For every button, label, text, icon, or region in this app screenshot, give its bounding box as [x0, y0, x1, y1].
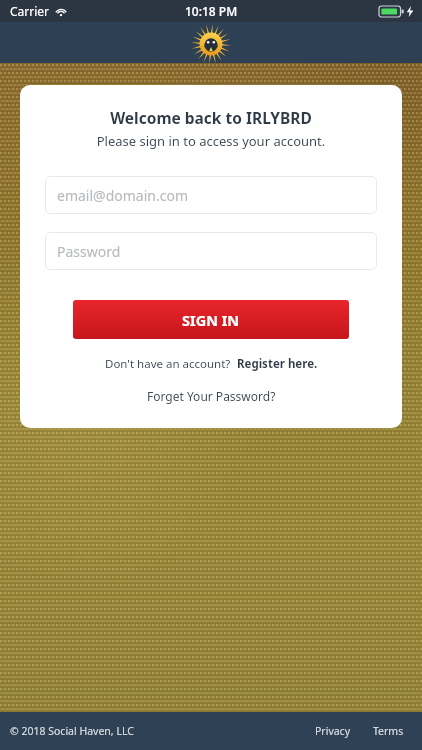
other: IRLYBRD logo	[191, 24, 231, 64]
staticText: Welcome back to IRLYBRD	[45, 107, 377, 128]
staticText: Password	[57, 242, 121, 261]
staticText: Terms	[373, 724, 404, 738]
staticText: Forget Your Password?	[147, 388, 276, 404]
staticText: Carrier	[10, 3, 50, 19]
staticText: Don't have an account?	[105, 356, 231, 372]
staticText: Privacy	[315, 724, 351, 738]
button[interactable]: Privacy	[309, 724, 357, 738]
button[interactable]: Register here.	[237, 356, 318, 372]
button[interactable]: SIGN IN	[73, 300, 349, 339]
staticText: SIGN IN	[182, 310, 240, 330]
button[interactable]: Terms	[367, 724, 410, 738]
staticText: Please sign in to access your account.	[45, 132, 377, 150]
button[interactable]: Forget Your Password?	[45, 388, 377, 404]
button[interactable]: Password	[45, 232, 377, 270]
staticText: Register here.	[237, 356, 318, 372]
staticText: email@domain.com	[57, 186, 188, 205]
button[interactable]: email@domain.com	[45, 176, 377, 214]
staticText: © 2018 Social Haven, LLC	[10, 724, 134, 738]
staticText: 10:18 PM	[185, 3, 238, 19]
